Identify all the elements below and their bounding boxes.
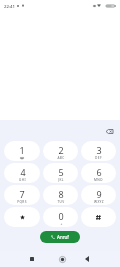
staticText: 8 [58,188,64,200]
staticText: 22:41 [4,3,15,9]
staticText: PQRS [17,200,27,204]
staticText: 3 [96,144,102,156]
button[interactable]: Anruf [40,231,80,243]
button[interactable]: 2 [43,141,78,161]
staticText: 6 [96,166,102,178]
button[interactable]: Back [79,251,95,267]
staticText: ABC [57,156,65,160]
staticText: 4 [20,166,26,178]
button[interactable]: 1 [4,141,40,161]
staticText: Anruf [57,234,69,240]
staticText: 5 [58,166,64,178]
button[interactable]: 7 [4,185,40,205]
staticText: DEF [95,156,102,160]
button[interactable]: 8 [43,185,78,205]
button[interactable] [4,207,40,227]
button[interactable]: 0 [43,207,78,227]
staticText: 9 [96,188,102,200]
staticText: GHI [19,178,26,182]
staticText: 1 [19,144,25,156]
button[interactable] [81,207,116,227]
staticText: 7 [19,188,25,200]
staticText: + [60,222,63,226]
button[interactable]: Recent apps [24,251,40,267]
staticText: WXYZ [94,200,104,204]
button[interactable]: 6 [81,163,116,183]
staticText: JKL [58,178,64,182]
button[interactable]: 5 [43,163,78,183]
staticText: 0 [58,210,64,222]
button[interactable]: 9 [81,185,116,205]
button[interactable]: 3 [81,141,116,161]
staticText: 2 [58,144,64,156]
button[interactable]: 4 [4,163,40,183]
staticText: TUV [57,200,65,204]
button[interactable]: Backspace [103,125,115,137]
button[interactable]: Home [54,251,70,267]
staticText: MNO [94,178,103,182]
